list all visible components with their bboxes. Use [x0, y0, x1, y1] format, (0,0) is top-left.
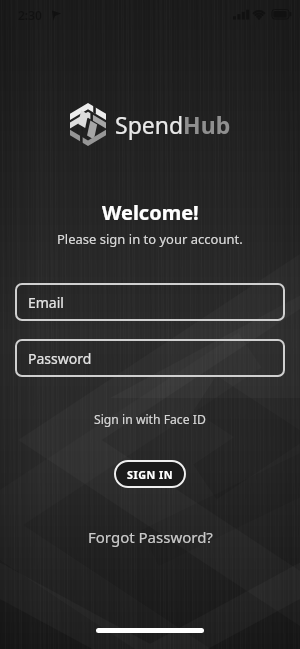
- button[interactable]: SIGN IN: [114, 460, 186, 488]
- staticText: Please sign in to your account.: [57, 230, 243, 248]
- button[interactable]: Sign in with Face ID: [94, 411, 206, 428]
- button[interactable]: Forgot Password?: [88, 527, 213, 547]
- staticText: Welcome!: [102, 199, 199, 226]
- staticText: Email: [28, 293, 64, 312]
- button[interactable]: Email: [15, 283, 285, 321]
- staticText: SIGN IN: [127, 467, 174, 482]
- staticText: Password: [28, 349, 92, 368]
- staticText: 2:30: [18, 7, 42, 23]
- staticText: SpendHub: [115, 109, 231, 140]
- button[interactable]: Password: [15, 339, 285, 377]
